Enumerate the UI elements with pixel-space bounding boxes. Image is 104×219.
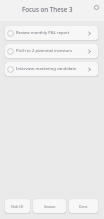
button[interactable]: Snooze	[33, 199, 66, 213]
staticText: Done	[79, 204, 88, 209]
button[interactable]: Hide (3)	[5, 199, 30, 213]
staticText: Hide (3)	[11, 204, 24, 209]
staticText: Interview marketing candidate	[16, 66, 87, 72]
staticText: Review monthly P&L report	[16, 30, 87, 36]
button[interactable]: More options	[91, 2, 102, 13]
staticText: Pitch to 2 potential investors	[16, 48, 87, 54]
staticText: Focus on These 3	[22, 5, 73, 13]
button[interactable]: Review monthly P&L report	[5, 26, 98, 40]
button[interactable]: Pitch to 2 potential investors	[5, 44, 98, 58]
staticText: Snooze	[44, 204, 56, 209]
button[interactable]: Done	[69, 199, 98, 213]
button[interactable]: Interview marketing candidate	[5, 62, 98, 76]
